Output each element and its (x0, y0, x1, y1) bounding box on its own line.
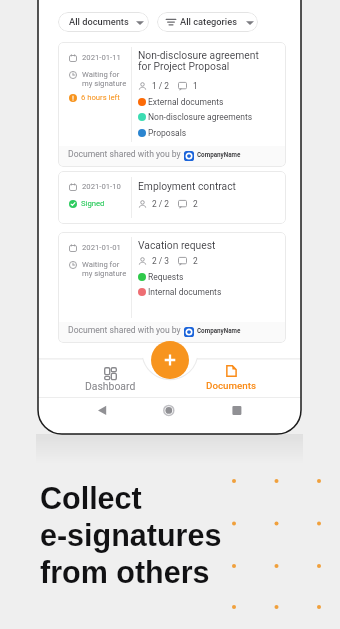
staticText: Internal documents (148, 287, 222, 297)
staticText: CompanyName (197, 327, 241, 334)
staticText: e-signatures (40, 518, 222, 552)
staticText: 2021-01-01 (82, 243, 121, 252)
staticText: Collect (40, 481, 142, 515)
staticText: 2 (193, 199, 198, 209)
staticText: Non-disclosure agreement for Project Pro… (138, 49, 259, 73)
staticText: Vacation request (138, 239, 216, 251)
button[interactable]: 2021-01-10 (58, 171, 286, 224)
staticText: Document shared with you by (68, 149, 181, 159)
staticText: from others (40, 555, 210, 589)
button[interactable]: Documents (197, 358, 265, 397)
staticText: Requests (148, 272, 184, 282)
staticText: All documents (69, 16, 129, 27)
staticText: 2 / 3 (152, 256, 170, 266)
staticText: 6 hours left (81, 93, 120, 102)
staticText: Dashboard (85, 380, 136, 392)
staticText: External documents (148, 97, 224, 107)
staticText: 2 (193, 256, 198, 266)
staticText: Document shared with you by (68, 325, 181, 335)
staticText: Non-disclosure agreements (148, 112, 253, 122)
button[interactable]: 2021-01-01 (58, 232, 286, 343)
staticText: 2 / 2 (152, 199, 170, 209)
staticText: 1 / 2 (152, 81, 170, 91)
staticText: All categories (180, 16, 237, 27)
button[interactable]: 2021-01-11 (58, 42, 286, 167)
staticText: 1 (193, 81, 198, 91)
staticText: Waiting for my signature (82, 260, 127, 278)
staticText: 2021-01-10 (82, 182, 121, 191)
staticText: Waiting for my signature (82, 70, 127, 88)
staticText: Proposals (148, 128, 187, 138)
button[interactable]: Dashboard (76, 358, 144, 397)
staticText: Signed (81, 199, 105, 208)
staticText: CompanyName (197, 151, 241, 158)
button[interactable]: Create document (151, 341, 189, 379)
staticText: 2021-01-11 (82, 53, 121, 62)
staticText: Employment contract (138, 180, 236, 192)
staticText: Documents (206, 380, 257, 391)
button[interactable]: All categories (157, 12, 258, 32)
button[interactable]: All documents (58, 12, 149, 32)
